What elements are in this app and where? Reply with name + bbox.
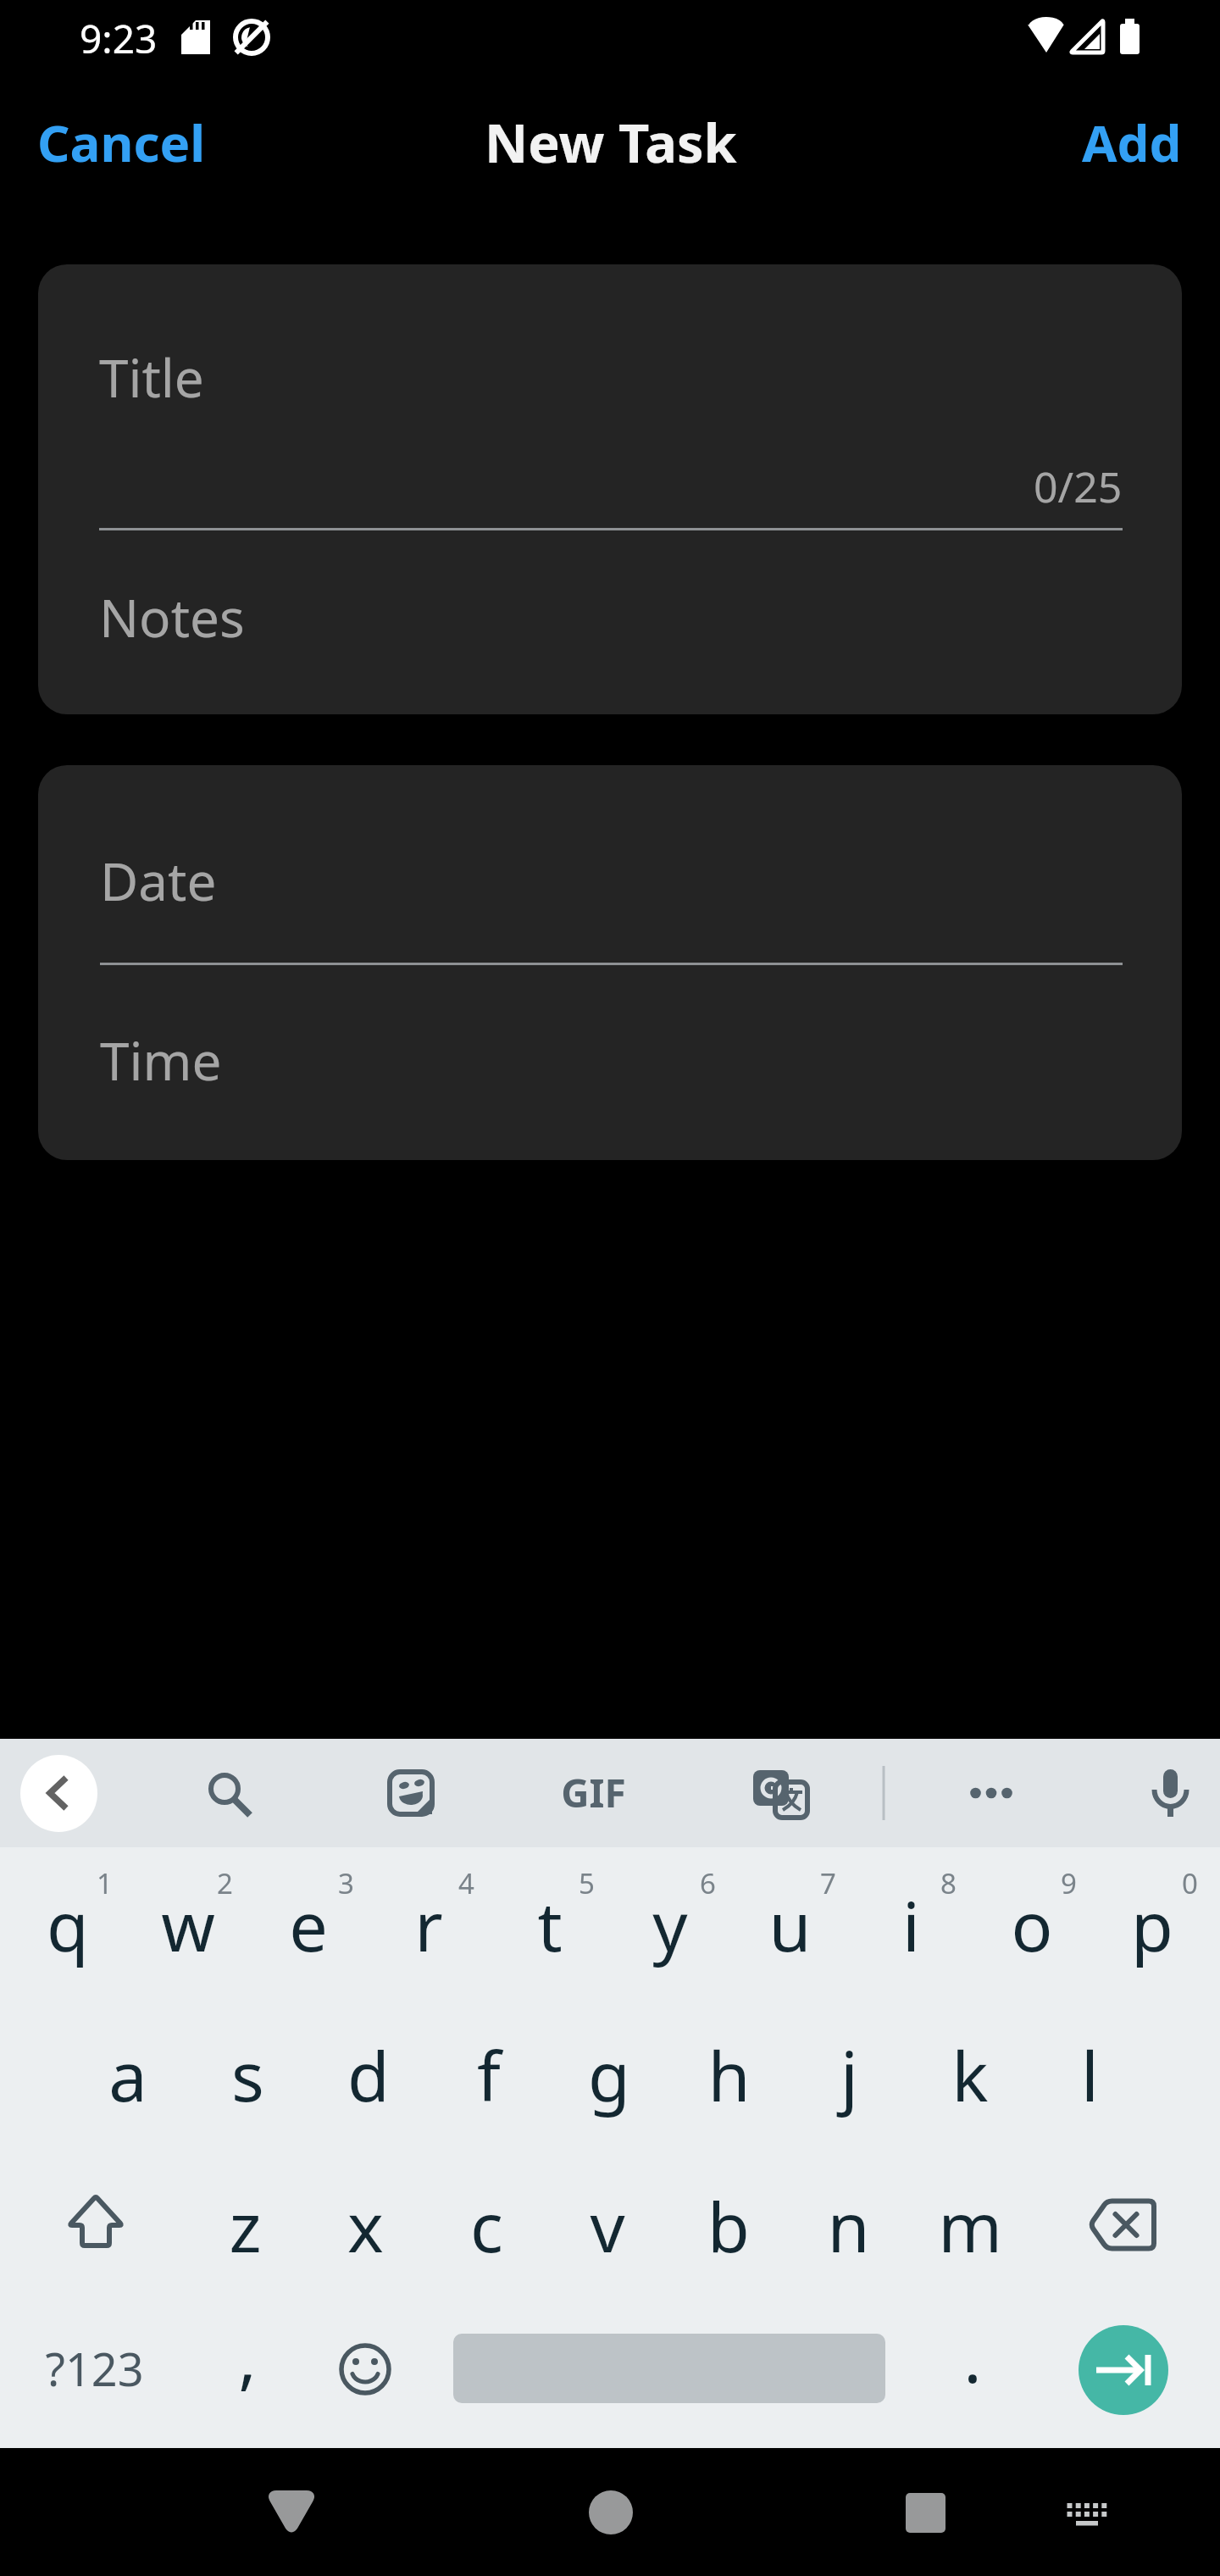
staticText: a: [108, 2028, 147, 2121]
staticText: z: [229, 2179, 262, 2272]
staticText: Cancel: [37, 108, 206, 177]
staticText: m: [938, 2179, 1002, 2272]
staticText: x: [347, 2179, 384, 2272]
staticText: GIF: [561, 1766, 626, 1819]
staticText: n: [827, 2179, 870, 2272]
staticText: t: [537, 1878, 563, 1971]
button[interactable]: Cancel: [37, 108, 206, 177]
staticText: 8: [940, 1864, 957, 1902]
button[interactable]: [0, 2448, 407, 2576]
staticText: q: [47, 1878, 89, 1971]
staticText: 0: [1182, 1864, 1198, 1902]
staticText: h: [707, 2028, 751, 2121]
staticText: d: [347, 2028, 390, 2121]
button[interactable]: Title: [38, 264, 1182, 714]
button[interactable]: Date: [38, 765, 1182, 1160]
staticText: New Task: [485, 106, 737, 179]
staticText: Date: [100, 845, 217, 916]
staticText: 6: [700, 1864, 716, 1902]
staticText: 3: [338, 1864, 354, 1902]
staticText: 4: [458, 1864, 474, 1902]
staticText: j: [840, 2028, 858, 2121]
staticText: ,: [238, 2310, 257, 2402]
staticText: r: [414, 1878, 443, 1971]
button[interactable]: [407, 2448, 813, 2576]
staticText: 9: [1061, 1864, 1077, 1902]
staticText: c: [470, 2179, 503, 2272]
staticText: v: [590, 2179, 625, 2272]
staticText: 9:23: [80, 12, 158, 65]
staticText: k: [951, 2028, 989, 2121]
staticText: Add: [1082, 108, 1182, 177]
button[interactable]: [813, 2448, 1220, 2576]
staticText: w: [161, 1878, 215, 1971]
staticText: Time: [100, 1024, 222, 1096]
staticText: e: [289, 1878, 328, 1971]
staticText: 1: [97, 1864, 113, 1902]
staticText: s: [231, 2028, 264, 2121]
button[interactable]: [20, 1755, 97, 1832]
staticText: y: [652, 1878, 688, 1971]
staticText: p: [1131, 1878, 1173, 1971]
staticText: Notes: [99, 581, 245, 652]
staticText: b: [707, 2179, 750, 2272]
staticText: o: [1011, 1878, 1053, 1971]
button[interactable]: [1079, 2325, 1168, 2415]
staticText: 7: [820, 1864, 836, 1902]
button[interactable]: Add: [1082, 108, 1182, 177]
staticText: i: [902, 1878, 920, 1971]
staticText: .: [963, 2310, 982, 2402]
staticText: l: [1081, 2028, 1099, 2121]
staticText: g: [588, 2028, 630, 2121]
staticText: 2: [217, 1864, 233, 1902]
staticText: Title: [99, 341, 204, 413]
staticText: f: [477, 2028, 501, 2121]
staticText: 0/25: [1034, 458, 1123, 515]
staticText: 5: [579, 1864, 595, 1902]
staticText: ?123: [45, 2337, 144, 2400]
staticText: u: [768, 1878, 812, 1971]
